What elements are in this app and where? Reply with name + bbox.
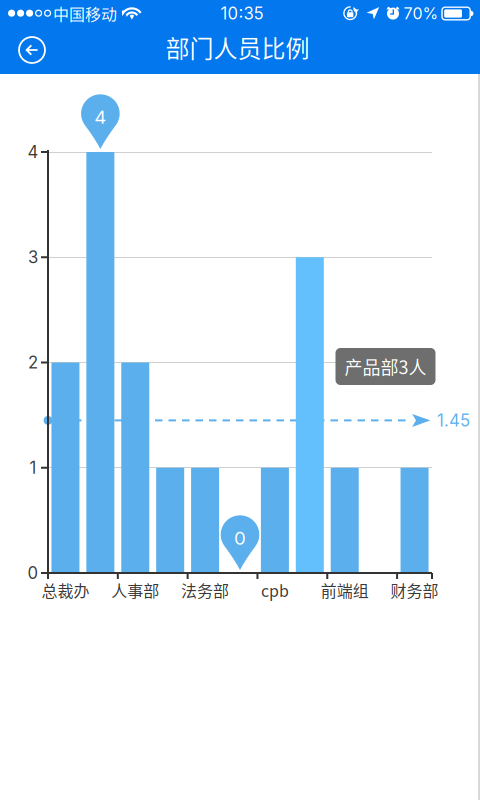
staticText: 3: [28, 247, 38, 267]
staticText: 中国移动: [53, 2, 117, 25]
staticText: 1.45: [437, 410, 470, 430]
staticText: 总裁办: [41, 578, 89, 602]
staticText: 0: [234, 527, 246, 549]
staticText: 法务部: [181, 578, 229, 602]
staticText: 0: [27, 563, 38, 583]
button[interactable]: Back: [10, 28, 54, 72]
staticText: 财务部: [390, 578, 438, 602]
staticText: 1: [29, 458, 36, 478]
staticText: 前端组: [321, 578, 369, 602]
button[interactable]: 产品部3人: [335, 348, 435, 385]
staticText: 2: [28, 352, 38, 373]
staticText: cpb: [261, 578, 289, 602]
staticText: 产品部3人: [344, 353, 426, 380]
staticText: 70%: [403, 4, 438, 23]
staticText: 10:35: [220, 3, 263, 24]
staticText: 部门人员比例: [165, 30, 309, 64]
staticText: 人事部: [111, 578, 159, 602]
staticText: 4: [94, 106, 106, 128]
staticText: 4: [27, 142, 38, 162]
